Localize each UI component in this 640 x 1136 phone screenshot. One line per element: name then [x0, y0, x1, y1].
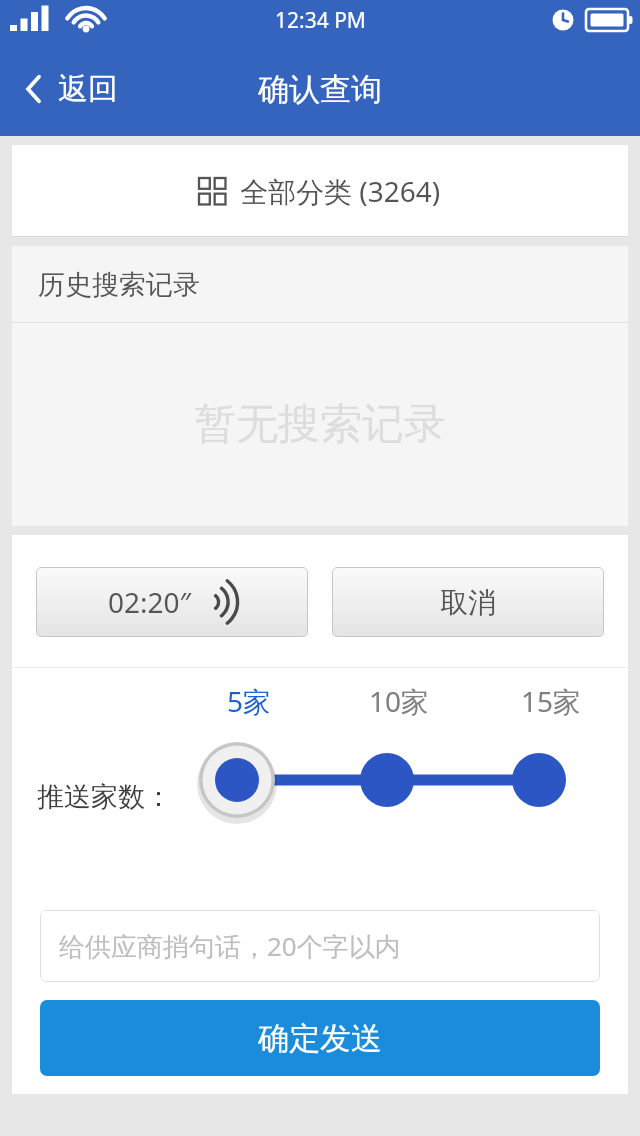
- staticText: 暂无搜索记录: [194, 398, 446, 451]
- staticText: 10家: [359, 682, 439, 720]
- staticText: 历史搜索记录: [38, 268, 200, 302]
- staticText: 15家: [511, 682, 591, 720]
- staticText: 给供应商捎句话，20个字以内: [59, 928, 401, 964]
- staticText: 取消: [440, 585, 496, 620]
- button[interactable]: 02:20″: [36, 567, 308, 637]
- other: Back: [24, 72, 44, 106]
- button[interactable]: 全部分类 (3264): [12, 145, 628, 237]
- staticText: 02:20″: [108, 583, 191, 621]
- staticText: 确定发送: [258, 1019, 382, 1058]
- button[interactable]: Push count slider: [12, 668, 628, 910]
- button[interactable]: Back: [0, 58, 140, 120]
- staticText: 确认查询: [258, 70, 382, 109]
- button[interactable]: 取消: [332, 567, 604, 637]
- staticText: 返回: [58, 70, 118, 108]
- staticText: 5家: [209, 682, 289, 720]
- staticText: 全部分类 (3264): [240, 172, 441, 210]
- button[interactable]: 给供应商捎句话，20个字以内: [40, 910, 600, 982]
- staticText: 12:34 PM: [275, 6, 366, 35]
- button[interactable]: 确定发送: [40, 1000, 600, 1076]
- staticText: 推送家数：: [37, 780, 172, 814]
